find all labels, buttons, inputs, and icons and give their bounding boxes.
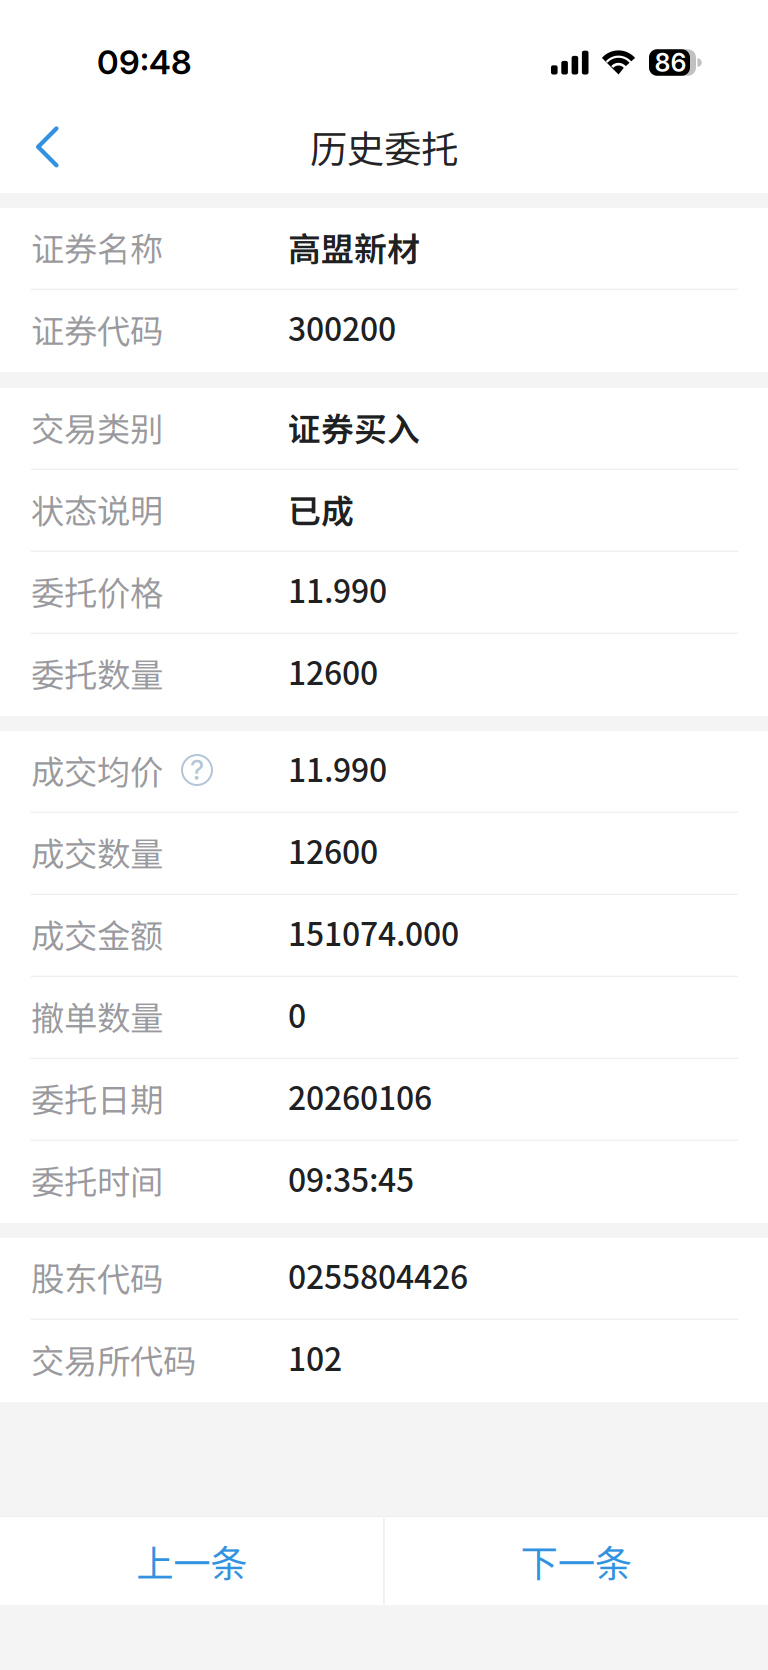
staticText: 委托时间 xyxy=(31,1156,163,1204)
staticText: 11.990 xyxy=(288,566,387,612)
staticText: 上一条 xyxy=(136,1534,247,1588)
button[interactable]: 下一条 xyxy=(385,1517,768,1605)
staticText: 状态说明 xyxy=(31,485,163,533)
staticText: 12600 xyxy=(288,648,378,694)
staticText: 09:48 xyxy=(97,42,192,82)
staticText: 证券名称 xyxy=(31,223,163,271)
staticText: 20260106 xyxy=(288,1073,432,1119)
staticText: 成交金额 xyxy=(31,910,163,958)
staticText: ? xyxy=(190,754,204,786)
staticText: 102 xyxy=(288,1334,342,1380)
staticText: 300200 xyxy=(288,304,396,350)
staticText: 09:35:45 xyxy=(288,1155,414,1201)
staticText: 11.990 xyxy=(288,745,387,791)
staticText: 交易所代码 xyxy=(31,1335,196,1383)
staticText: 下一条 xyxy=(521,1534,632,1588)
button[interactable]: 返回 xyxy=(0,100,86,193)
staticText: 委托日期 xyxy=(31,1074,163,1122)
button[interactable]: 上一条 xyxy=(0,1517,383,1605)
staticText: 股东代码 xyxy=(31,1253,163,1301)
button[interactable]: 说明 xyxy=(163,755,212,785)
staticText: 12600 xyxy=(288,827,378,873)
staticText: 委托数量 xyxy=(31,649,163,697)
staticText: 交易类别 xyxy=(31,403,163,451)
staticText: 151074.000 xyxy=(288,909,459,955)
staticText: 已成 xyxy=(288,485,354,533)
staticText: 撤单数量 xyxy=(31,992,163,1040)
staticText: 成交均价 xyxy=(31,746,163,794)
staticText: 证券买入 xyxy=(288,403,420,451)
staticText: 历史委托 xyxy=(310,119,458,174)
staticText: 证券代码 xyxy=(31,305,163,353)
staticText: 高盟新材 xyxy=(288,223,420,271)
staticText: 0 xyxy=(288,991,306,1037)
staticText: 成交数量 xyxy=(31,828,163,876)
staticText: 86 xyxy=(654,47,686,78)
staticText: 0255804426 xyxy=(288,1252,468,1298)
staticText: 委托价格 xyxy=(31,567,163,615)
